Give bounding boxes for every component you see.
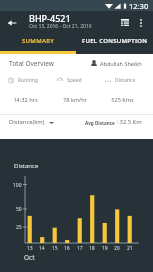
staticText: Distance — [14, 162, 39, 170]
staticText: 25 — [16, 224, 22, 231]
staticText: Total Overview — [9, 59, 54, 68]
staticText: 525 Kms — [111, 96, 134, 104]
staticText: Avg Distance — [85, 120, 115, 126]
staticText: 12:30 — [129, 1, 149, 11]
staticText: 78 km/hr — [63, 96, 87, 104]
staticText: 15 — [52, 245, 58, 252]
staticText: Oct — [24, 253, 35, 262]
button[interactable]: FUEL CONSUMPTION — [76, 30, 153, 51]
staticText: SUMMARY — [22, 37, 55, 45]
staticText: Oct 13, 2016 - Oct 21, 2016 — [29, 23, 92, 30]
staticText: BHP-4521 — [29, 12, 71, 24]
staticText: 100 — [13, 182, 22, 189]
button[interactable]: Distance(km) — [9, 118, 54, 126]
staticText: Distance(km) — [9, 118, 45, 126]
staticText: 14:32 hrs — [13, 96, 38, 104]
button[interactable]: Calendar — [116, 13, 133, 32]
staticText: : 32.5 Km — [115, 118, 142, 126]
button[interactable]: More options — [133, 13, 149, 32]
staticText: Running — [18, 77, 38, 84]
staticText: Speed — [67, 77, 82, 84]
staticText: 14 — [39, 245, 45, 252]
staticText: 21 — [127, 245, 133, 252]
staticText: 17 — [77, 245, 83, 252]
staticText: Abdullah Sheikh — [100, 60, 142, 67]
button[interactable]: Back — [0, 13, 24, 32]
staticText: Distance — [115, 77, 136, 84]
staticText: 18 — [89, 245, 95, 252]
button[interactable]: SUMMARY — [0, 30, 76, 51]
staticText: FUEL CONSUMPTION — [82, 37, 148, 45]
staticText: 19 — [102, 245, 108, 252]
staticText: 20 — [114, 245, 120, 252]
staticText: 13 — [27, 245, 33, 252]
staticText: 50 — [16, 206, 22, 213]
staticText: 16 — [64, 245, 70, 252]
